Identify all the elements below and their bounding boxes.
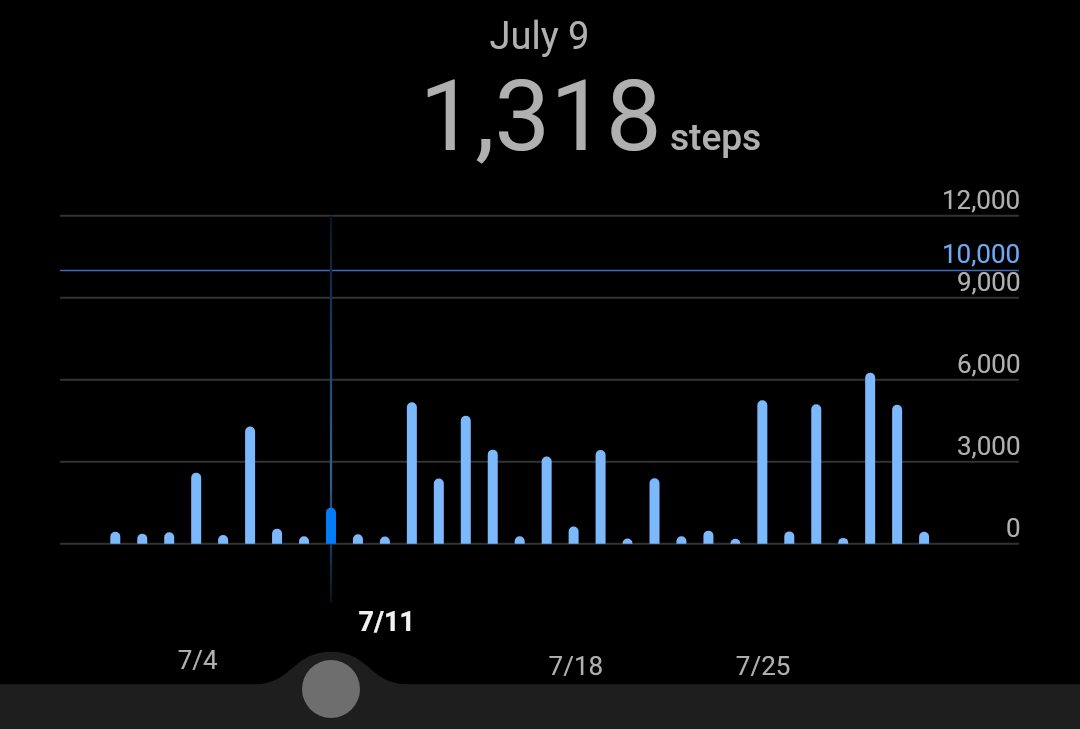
button[interactable]: Scrub handle <box>302 660 360 718</box>
button[interactable]: Step chart for July, July 9 selected <box>0 0 1080 729</box>
